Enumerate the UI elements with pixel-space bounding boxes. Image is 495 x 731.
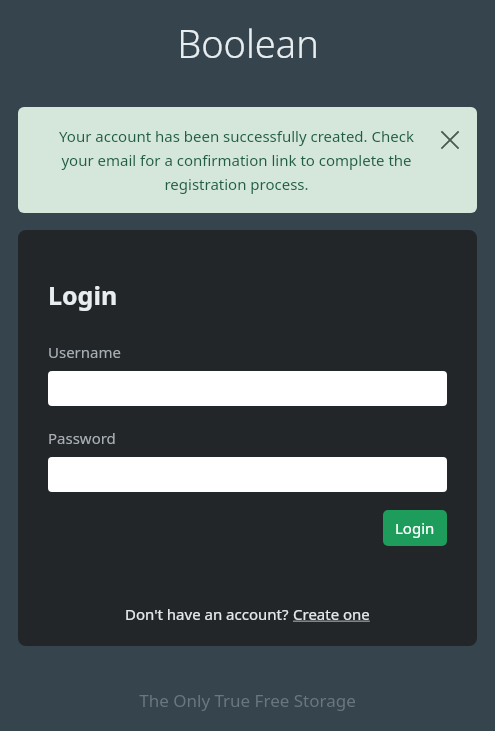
button[interactable]: Login <box>383 510 447 546</box>
staticText: Boolean <box>177 17 319 69</box>
staticText: Your account has been successfully creat… <box>48 126 425 194</box>
staticText: Username <box>48 342 121 362</box>
button[interactable]: Dismiss notification <box>433 123 467 157</box>
button[interactable]: Password input field <box>48 457 447 492</box>
staticText: Login <box>48 278 118 312</box>
staticText: Create one <box>293 604 370 624</box>
staticText: The Only True Free Storage <box>139 689 356 712</box>
staticText: Password <box>48 428 116 448</box>
staticText: Don't have an account? <box>125 604 293 624</box>
staticText: Login <box>395 518 435 538</box>
button[interactable]: Username input field <box>48 371 447 406</box>
button[interactable]: Create one <box>293 604 370 624</box>
